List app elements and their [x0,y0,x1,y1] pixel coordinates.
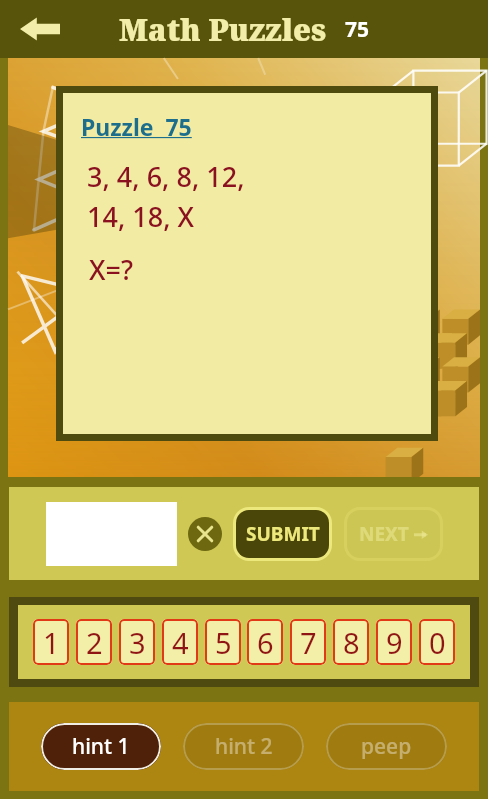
button[interactable]: 9 [376,619,412,665]
staticText: NEXT [359,521,409,547]
button[interactable]: 5 [205,619,241,665]
button[interactable]: 0 [419,619,455,665]
button[interactable]: peep [326,723,447,770]
staticText: 14, 18, X [87,198,195,235]
staticText: 6 [257,623,274,662]
staticText: peep [361,732,412,761]
button[interactable]: hint 2 [183,723,304,770]
button[interactable]: hint 1 [41,723,161,770]
staticText: 4 [172,623,189,662]
staticText: SUBMIT [246,521,320,547]
staticText: 9 [386,623,403,662]
button[interactable]: 7 [290,619,326,665]
staticText: 1 [43,623,60,662]
staticText: Puzzle 75 [81,111,192,142]
staticText: 75 [345,15,370,44]
button[interactable]: 4 [162,619,198,665]
staticText: 8 [343,623,360,662]
button[interactable]: 3 [119,619,155,665]
staticText: X=? [89,251,134,288]
button[interactable]: NEXT [347,510,440,558]
staticText: 0 [429,623,446,662]
staticText: 5 [215,623,232,662]
button[interactable]: 8 [333,619,369,665]
button[interactable]: 6 [247,619,283,665]
button[interactable]: SUBMIT [236,510,329,558]
button[interactable]: 1 [33,619,69,665]
staticText: Math Puzzles [119,9,327,50]
staticText: 3 [129,623,146,662]
staticText: 3, 4, 6, 8, 12, [87,158,245,195]
button[interactable]: 2 [76,619,112,665]
button[interactable]: Back [14,7,66,51]
staticText: hint 2 [215,732,273,761]
staticText: hint 1 [72,732,130,761]
staticText: 2 [86,623,103,662]
staticText: 7 [300,623,317,662]
button[interactable]: Clear [187,516,223,552]
